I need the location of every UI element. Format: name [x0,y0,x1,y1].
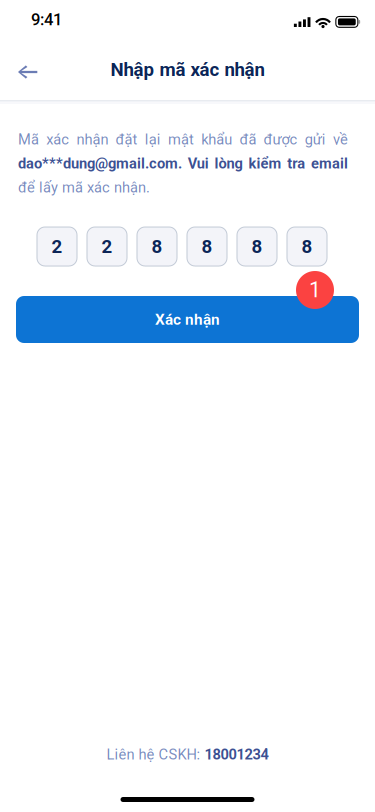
button[interactable]: 18001234 [204,746,268,763]
staticText: email [311,155,348,172]
staticText: 8 [301,236,312,257]
button[interactable]: Code digit 8 [237,227,277,266]
staticText: khẩu [201,131,232,148]
button[interactable]: Code digit 2 [37,227,77,266]
staticText: được [264,131,298,148]
staticText: để lấy mã xác nhận. [18,179,150,196]
staticText: lòng [215,155,243,172]
staticText: Nhập mã xác nhận [110,59,264,80]
button[interactable]: Back [0,47,37,91]
button[interactable]: Code digit 8 [287,227,327,266]
staticText: 8 [251,236,262,257]
staticText: 18001234 [204,746,268,763]
staticText: 2 [101,236,112,257]
staticText: nhận [76,131,108,148]
staticText: 8 [151,236,162,257]
staticText: Xác nhận [155,310,220,328]
staticText: về [333,131,348,148]
staticText: Liên hệ CSKH: [106,746,204,763]
staticText: Vui [188,155,209,172]
staticText: 1 [309,277,321,302]
staticText: kiểm [248,155,281,172]
staticText: mật [168,131,194,148]
staticText: Mã [18,131,39,148]
button[interactable]: Code digit 8 [187,227,227,266]
staticText: 9:41 [31,10,62,29]
staticText: gửi [305,131,326,148]
staticText: 8 [201,236,212,257]
staticText: dao***dung@gmail.com. [18,155,182,172]
staticText: xác [46,131,69,148]
button[interactable]: Code digit 8 [137,227,177,266]
staticText: đã [239,131,256,148]
button[interactable]: Xác nhận [16,296,359,343]
staticText: lại [145,131,161,148]
staticText: tra [287,155,305,172]
staticText: đặt [116,131,138,148]
staticText: 2 [51,236,62,257]
button[interactable]: Code digit 2 [87,227,127,266]
